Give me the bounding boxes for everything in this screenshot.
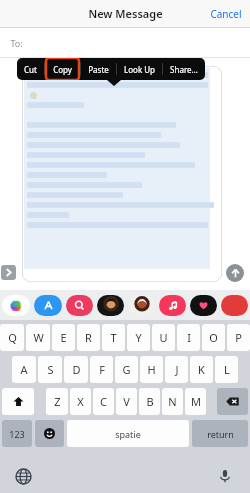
staticText: B — [146, 394, 154, 409]
staticText: To: — [10, 37, 23, 49]
button[interactable]: V — [116, 388, 137, 415]
button[interactable]: Look Up — [117, 58, 162, 80]
staticText: U — [159, 330, 168, 345]
staticText: D — [72, 362, 81, 377]
button[interactable]: P — [227, 324, 250, 351]
staticText: V — [123, 394, 130, 409]
button[interactable]: Share… — [163, 58, 205, 80]
staticText: S — [47, 362, 54, 377]
staticText: Y — [135, 330, 142, 345]
button[interactable]: B — [139, 388, 160, 415]
staticText: K — [198, 362, 205, 377]
button[interactable]: F — [90, 356, 113, 383]
staticText: 123 — [9, 428, 25, 440]
button[interactable]: App — [97, 295, 124, 316]
staticText: G — [122, 362, 131, 377]
button[interactable]: M — [185, 388, 206, 415]
button[interactable]: S — [38, 356, 62, 383]
staticText: New Message — [88, 6, 163, 21]
button[interactable]: E — [52, 324, 75, 351]
button[interactable]: J — [165, 356, 188, 383]
staticText: N — [168, 394, 177, 409]
button[interactable]: A — [12, 356, 36, 383]
staticText: Look Up — [124, 64, 155, 75]
button[interactable]: T — [102, 324, 125, 351]
staticText: L — [224, 362, 230, 377]
staticText: Copy — [53, 64, 72, 75]
staticText: A — [20, 362, 28, 377]
button[interactable]: H — [140, 356, 163, 383]
staticText: spatie — [115, 428, 141, 440]
button[interactable]: return — [192, 420, 248, 447]
button[interactable]: G — [115, 356, 138, 383]
button[interactable]: O — [202, 324, 225, 351]
staticText: R — [85, 330, 92, 345]
button[interactable]: I — [177, 324, 200, 351]
button[interactable]: R — [77, 324, 100, 351]
button[interactable]: App — [128, 295, 155, 316]
staticText: X — [77, 394, 84, 409]
button[interactable]: App — [221, 295, 248, 316]
staticText: return — [207, 428, 234, 440]
button[interactable]: spatie — [67, 420, 189, 447]
button[interactable]: D — [64, 356, 88, 383]
button[interactable]: Cancel — [202, 3, 250, 25]
staticText: I — [187, 330, 191, 345]
staticText: Q — [8, 330, 17, 345]
button[interactable]: App — [190, 295, 217, 316]
button[interactable]: L — [215, 356, 238, 383]
staticText: O — [209, 330, 218, 345]
staticText: E — [60, 330, 67, 345]
button[interactable]: 123 — [2, 420, 32, 447]
button[interactable]: U — [152, 324, 175, 351]
button[interactable]: Paste — [81, 58, 116, 80]
button[interactable]: Emoji — [35, 420, 64, 447]
staticText: W — [33, 330, 44, 345]
staticText: C — [100, 394, 107, 409]
staticText: J — [175, 362, 179, 377]
button[interactable] — [22, 66, 222, 282]
button[interactable]: Q — [0, 324, 24, 351]
staticText: Cancel — [210, 7, 242, 21]
button[interactable]: C — [93, 388, 114, 415]
staticText: P — [235, 330, 242, 345]
staticText: Z — [54, 394, 61, 409]
button[interactable]: Dictate — [218, 469, 232, 483]
staticText: F — [99, 362, 105, 377]
button[interactable]: Shift — [2, 388, 34, 415]
staticText: Paste — [88, 64, 109, 75]
staticText: T — [110, 330, 117, 345]
button[interactable]: Send — [226, 264, 244, 282]
button[interactable]: App — [159, 295, 186, 316]
button[interactable]: App — [34, 295, 62, 316]
button[interactable]: K — [190, 356, 213, 383]
button[interactable]: Backspace — [217, 388, 248, 415]
button[interactable]: X — [70, 388, 91, 415]
button[interactable]: To: — [0, 28, 250, 57]
button[interactable]: Change keyboard — [16, 469, 31, 484]
button[interactable]: Y — [127, 324, 150, 351]
staticText: H — [147, 362, 156, 377]
button[interactable]: N — [162, 388, 183, 415]
button[interactable]: App — [66, 295, 93, 316]
button[interactable]: Cut — [17, 58, 44, 80]
button[interactable]: More apps — [1, 265, 16, 280]
staticText: Share… — [170, 64, 198, 75]
staticText: Cut — [24, 64, 37, 75]
staticText: M — [191, 394, 201, 409]
button[interactable]: Z — [46, 388, 68, 415]
button[interactable]: W — [26, 324, 50, 351]
button[interactable]: App — [2, 295, 30, 316]
button[interactable]: Copy — [45, 58, 80, 80]
